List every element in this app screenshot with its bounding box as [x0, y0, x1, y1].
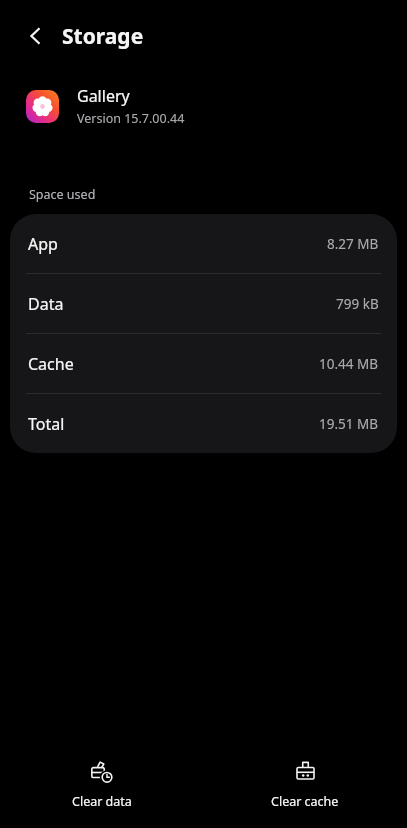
staticText: 8.27 MB	[327, 235, 379, 253]
staticText: Space used	[29, 186, 96, 203]
staticText: App	[28, 233, 58, 255]
staticText: Cache	[28, 353, 74, 375]
button[interactable]: Clear cache	[203, 753, 407, 818]
button[interactable]: Total	[10, 394, 397, 453]
button[interactable]: App	[10, 214, 397, 273]
staticText: Total	[28, 413, 65, 435]
other: Clear cache	[294, 761, 317, 784]
staticText: Storage	[62, 22, 144, 51]
button[interactable]: Back	[14, 14, 58, 58]
button[interactable]: Gallery	[0, 72, 407, 140]
staticText: Clear cache	[271, 793, 339, 810]
staticText: Version 15.7.00.44	[77, 110, 185, 127]
staticText: Data	[28, 293, 64, 315]
staticText: 19.51 MB	[319, 415, 379, 433]
staticText: 799 kB	[336, 295, 379, 313]
staticText: 10.44 MB	[319, 355, 379, 373]
button[interactable]: Data	[10, 274, 397, 333]
button[interactable]: Cache	[10, 334, 397, 393]
button[interactable]: Clear data	[0, 753, 203, 818]
staticText: Gallery	[77, 85, 130, 107]
staticText: Clear data	[72, 793, 132, 810]
other: Clear data	[90, 761, 113, 784]
